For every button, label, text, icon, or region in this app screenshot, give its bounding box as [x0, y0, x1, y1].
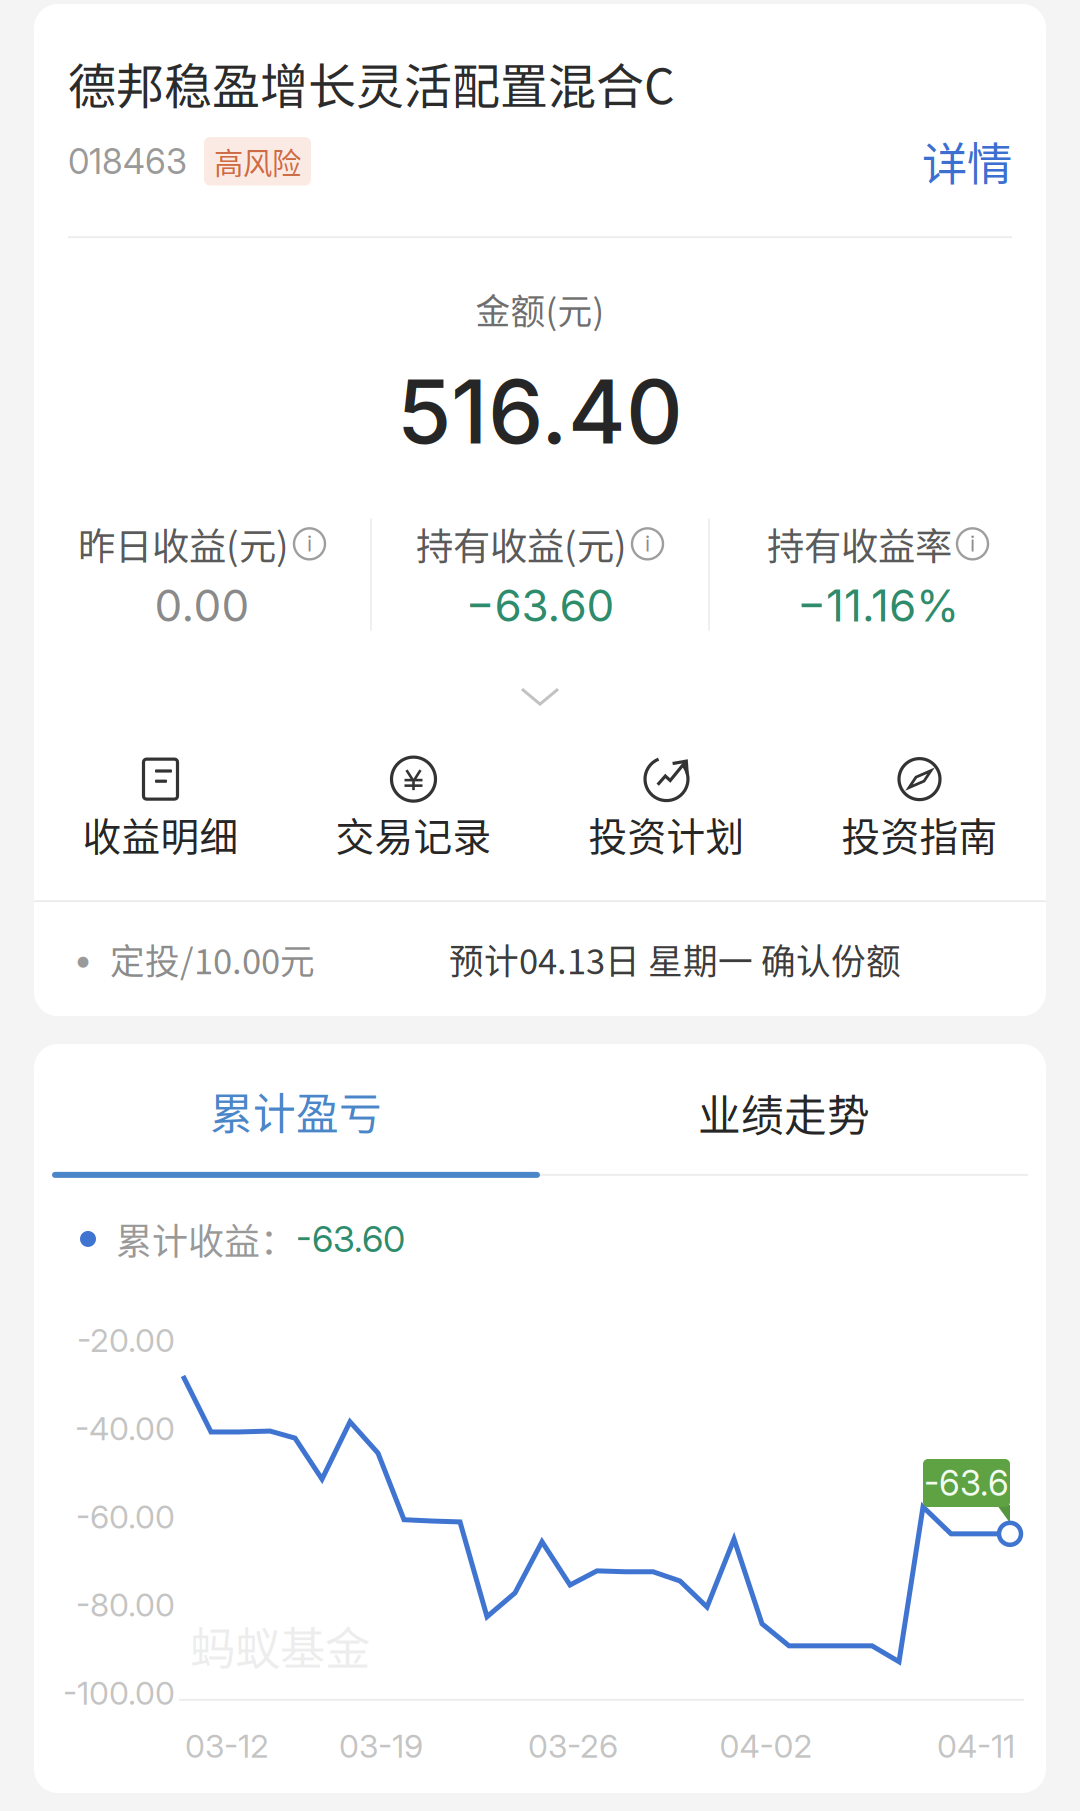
staticText: 蚂蚁基金: [190, 1613, 370, 1679]
button[interactable]: 展开: [520, 687, 560, 707]
staticText: 03-26: [528, 1727, 618, 1765]
button[interactable]: 投资指南: [793, 756, 1046, 862]
staticText: −63.60: [465, 579, 614, 632]
staticText: 03-19: [339, 1727, 423, 1765]
staticText: •: [74, 938, 92, 980]
staticText: 516.40: [397, 358, 683, 465]
staticText: 业绩走势: [698, 1082, 870, 1144]
staticText: -63.60: [296, 1217, 405, 1261]
staticText: 04-11: [937, 1727, 1015, 1765]
staticText: 金额(元): [475, 284, 604, 334]
staticText: 累计收益：: [116, 1213, 296, 1265]
staticText: 收益明细: [82, 806, 238, 862]
button[interactable]: 持有收益(元) 说明: [416, 517, 664, 571]
staticText: -60.00: [76, 1497, 175, 1536]
staticText: -80.00: [76, 1586, 175, 1624]
button[interactable]: 收益明细: [34, 756, 287, 862]
staticText: 德邦稳盈增长灵活配置混合C: [68, 48, 675, 117]
staticText: -100.00: [63, 1674, 175, 1712]
staticText: 定投/10.00元: [110, 934, 315, 984]
staticText: 04-02: [719, 1727, 812, 1765]
staticText: 018463: [68, 140, 187, 182]
staticText: 持有收益率: [767, 517, 952, 571]
button[interactable]: 详情: [922, 128, 1012, 194]
button[interactable]: 交易记录: [287, 756, 540, 862]
staticText: 投资计划: [588, 806, 744, 862]
staticText: -63.6: [924, 1462, 1009, 1504]
staticText: 03-12: [185, 1727, 269, 1765]
staticText: 昨日收益(元): [78, 517, 289, 571]
staticText: 高风险: [214, 140, 301, 183]
staticText: 持有收益(元): [416, 517, 627, 571]
staticText: 累计盈亏: [210, 1080, 382, 1142]
staticText: -40.00: [75, 1409, 175, 1448]
button[interactable]: •: [34, 902, 1046, 1016]
staticText: -20.00: [77, 1321, 175, 1360]
staticText: i: [645, 531, 650, 557]
staticText: 预计04.13日 星期一 确认份额: [449, 934, 901, 984]
button[interactable]: 持有收益率 说明: [767, 517, 989, 571]
staticText: −11.16%: [797, 579, 959, 632]
button[interactable]: 投资计划: [540, 756, 793, 862]
staticText: i: [307, 531, 312, 557]
staticText: 交易记录: [335, 806, 491, 862]
staticText: 0.00: [154, 579, 249, 632]
staticText: 详情: [922, 128, 1012, 194]
staticText: i: [970, 531, 975, 557]
staticText: 投资指南: [841, 806, 997, 862]
button[interactable]: 业绩走势: [540, 1046, 1028, 1176]
button[interactable]: 昨日收益(元) 说明: [78, 517, 326, 571]
button[interactable]: 累计盈亏: [52, 1044, 540, 1178]
